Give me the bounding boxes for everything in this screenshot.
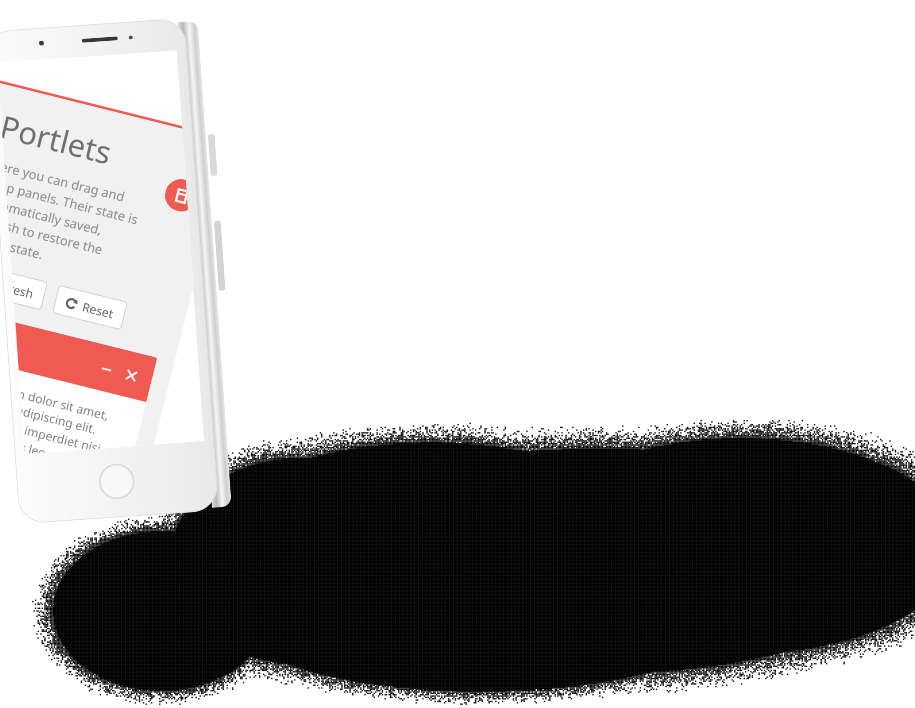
staticText: Here you can drag and drop panels. Their… xyxy=(4,145,157,293)
button[interactable]: Close xyxy=(120,364,142,386)
staticText: Refresh xyxy=(12,272,37,303)
staticText: Title xyxy=(15,313,102,382)
staticText: Reset xyxy=(80,296,117,324)
button[interactable]: Collapse xyxy=(95,358,117,379)
button[interactable]: Home xyxy=(97,462,136,501)
button[interactable]: Power xyxy=(208,134,218,176)
button[interactable]: Refresh xyxy=(11,256,50,312)
staticText: Lorem ipsum dolor sit amet, consectetur … xyxy=(18,356,132,454)
button[interactable]: Title xyxy=(14,294,163,454)
button[interactable]: Actions xyxy=(159,174,188,217)
staticText: Portlets xyxy=(0,97,119,179)
button[interactable]: Reset xyxy=(50,280,130,335)
